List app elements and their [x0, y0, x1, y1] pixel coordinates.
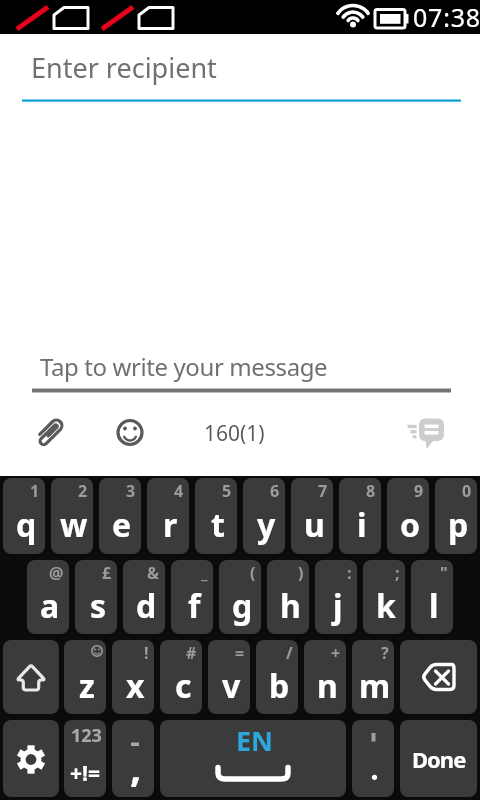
staticText: Tap to write your message [40, 350, 328, 383]
staticText: p [448, 503, 469, 547]
staticText: 3 [126, 480, 136, 502]
staticText: : [347, 562, 352, 584]
button[interactable]: 3 [99, 478, 141, 554]
button[interactable]: Enter recipient [0, 34, 480, 102]
button[interactable]: ) [267, 560, 309, 634]
staticText: z [79, 664, 95, 708]
button[interactable] [116, 419, 146, 447]
button[interactable]: EN [160, 720, 346, 797]
button[interactable] [36, 416, 66, 450]
button[interactable] [400, 640, 477, 714]
staticText: s [90, 584, 107, 628]
staticText: EN [236, 722, 274, 759]
staticText: ? [381, 642, 389, 664]
button[interactable] [3, 720, 59, 797]
staticText: 123 [71, 723, 102, 748]
staticText: , [130, 739, 142, 793]
staticText: o [400, 503, 421, 547]
button[interactable]: 6 [243, 478, 285, 554]
button[interactable]: 4 [147, 478, 189, 554]
staticText: £ [102, 562, 112, 584]
staticText: " [440, 562, 448, 584]
button[interactable]: ( [219, 560, 261, 634]
staticText: ( [250, 562, 256, 584]
staticText: 0 [462, 480, 472, 502]
staticText: x [126, 664, 145, 708]
staticText: 1 [30, 480, 40, 502]
button[interactable] [352, 720, 394, 797]
staticText: q [16, 503, 37, 547]
staticText: h [280, 584, 301, 628]
staticText: & [147, 562, 160, 584]
button[interactable]: 123 [64, 720, 106, 797]
button[interactable] [3, 640, 59, 714]
staticText: Enter recipient [31, 49, 217, 86]
button[interactable]: ? [352, 640, 394, 714]
button[interactable]: 8 [339, 478, 381, 554]
staticText: 4 [174, 480, 184, 502]
staticText: f [188, 584, 201, 628]
staticText: b [269, 664, 290, 708]
button[interactable]: / [256, 640, 298, 714]
staticText: e [112, 503, 132, 547]
staticText: c [175, 664, 192, 708]
staticText: 5 [222, 480, 232, 502]
staticText: 6 [270, 480, 280, 502]
staticText: v [222, 664, 241, 708]
staticText: 2 [78, 480, 88, 502]
staticText: i [357, 503, 367, 547]
button[interactable]: 9 [387, 478, 429, 554]
staticText: 07:38 [413, 0, 480, 34]
button[interactable]: 7 [291, 478, 333, 554]
staticText: a [40, 584, 60, 628]
button[interactable]: 0 [435, 478, 477, 554]
button[interactable]: ; [363, 560, 405, 634]
staticText: 9 [414, 480, 424, 502]
button[interactable]: 5 [195, 478, 237, 554]
staticText: ! [144, 642, 149, 664]
button[interactable]: " [411, 560, 453, 634]
staticText: Done [412, 744, 466, 774]
button[interactable]: Tap to write your message [0, 340, 480, 393]
staticText: l [429, 584, 439, 628]
staticText: t [211, 503, 225, 547]
button[interactable]: 2 [51, 478, 93, 554]
button[interactable]: £ [75, 560, 117, 634]
staticText: m [359, 664, 391, 708]
button[interactable]: & [123, 560, 165, 634]
staticText: / [286, 642, 293, 664]
staticText: j [333, 584, 343, 628]
staticText: 8 [366, 480, 376, 502]
button[interactable]: ! [112, 640, 154, 714]
staticText: +!= [70, 759, 100, 788]
button[interactable]: 1 [3, 478, 45, 554]
staticText: + [331, 642, 341, 664]
button[interactable]: : [315, 560, 357, 634]
staticText: # [186, 642, 197, 664]
staticText: n [317, 664, 338, 708]
staticText: w [60, 503, 88, 547]
staticText: 160(1) [204, 419, 265, 448]
staticText: r [163, 503, 178, 547]
button[interactable]: # [160, 640, 202, 714]
staticText: g [232, 584, 253, 628]
staticText: 7 [318, 480, 328, 502]
button[interactable]: + [304, 640, 346, 714]
staticText: ; [395, 562, 400, 584]
staticText: y [257, 503, 276, 547]
staticText: k [376, 584, 396, 628]
button[interactable]: Done [400, 720, 477, 797]
staticText: = [235, 642, 245, 664]
button[interactable]: _ [171, 560, 213, 634]
staticText: @ [49, 562, 64, 584]
staticText: u [304, 503, 325, 547]
button[interactable]: z [64, 640, 106, 714]
button[interactable]: , [112, 720, 154, 797]
button[interactable] [404, 414, 448, 454]
staticText: ) [298, 562, 304, 584]
button[interactable]: @ [27, 560, 69, 634]
button[interactable]: = [208, 640, 250, 714]
staticText: _ [201, 562, 208, 584]
staticText: d [136, 584, 157, 628]
